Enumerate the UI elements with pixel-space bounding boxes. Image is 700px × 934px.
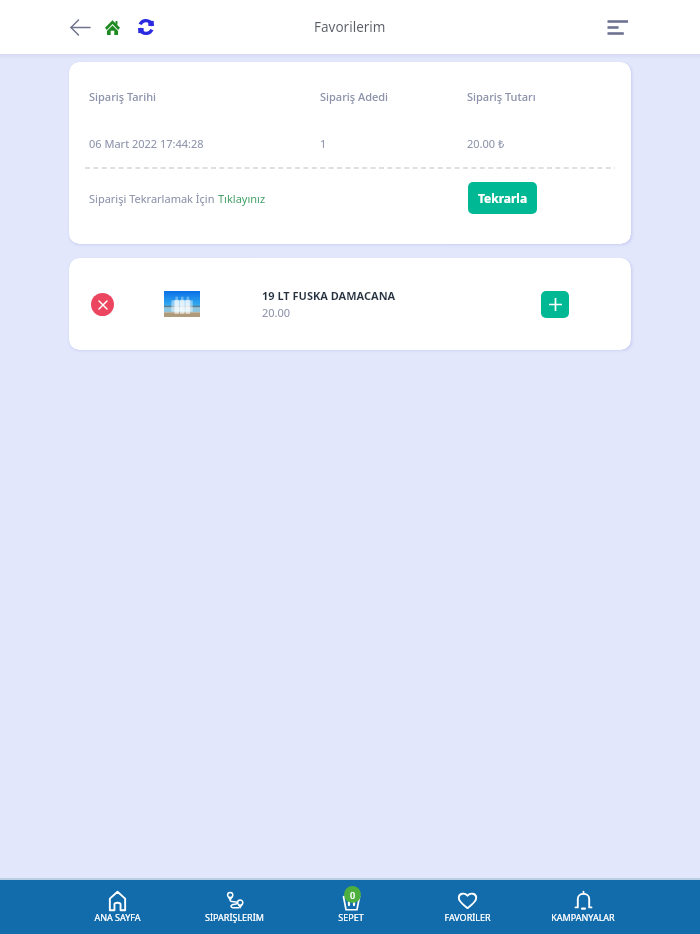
staticText: ANA SAYFA — [94, 911, 141, 923]
button[interactable]: Home — [97, 12, 127, 42]
button[interactable]: Tekrarla — [468, 182, 537, 214]
staticText: Sipariş Tutarı — [467, 89, 536, 104]
button[interactable]: Back — [63, 10, 97, 44]
staticText: FAVORİLER — [444, 911, 491, 923]
staticText: SİPARİŞLERİM — [205, 911, 264, 923]
staticText: 20.00 — [262, 305, 291, 320]
staticText: 1 — [320, 136, 467, 151]
button[interactable]: Remove — [91, 293, 114, 316]
staticText: 0 — [350, 889, 356, 901]
staticText: 06 Mart 2022 17:44:28 — [89, 136, 320, 151]
button[interactable]: Menu — [600, 10, 634, 44]
staticText: 19 LT FUSKA DAMACANA — [262, 288, 396, 303]
staticText: Sipariş Adedi — [320, 89, 467, 104]
staticText: Favorilerim — [314, 18, 386, 36]
staticText: Sipariş Tarihi — [89, 89, 320, 104]
staticText: Siparişi Tekrarlamak İçin — [89, 191, 218, 206]
staticText: SEPET — [338, 911, 364, 923]
button[interactable]: 0 — [293, 880, 409, 934]
staticText: Tıklayınız — [218, 191, 266, 206]
button[interactable]: SİPARİŞLERİM — [176, 880, 293, 934]
staticText: Tekrarla — [478, 190, 528, 206]
button[interactable]: Refresh — [131, 12, 161, 42]
button[interactable]: KAMPANYALAR — [525, 880, 641, 934]
staticText: 20.00 ₺ — [467, 136, 505, 151]
button[interactable]: FAVORİLER — [409, 880, 525, 934]
button[interactable]: Add to cart — [541, 291, 569, 318]
staticText: KAMPANYALAR — [551, 911, 615, 923]
button[interactable]: ANA SAYFA — [59, 880, 176, 934]
